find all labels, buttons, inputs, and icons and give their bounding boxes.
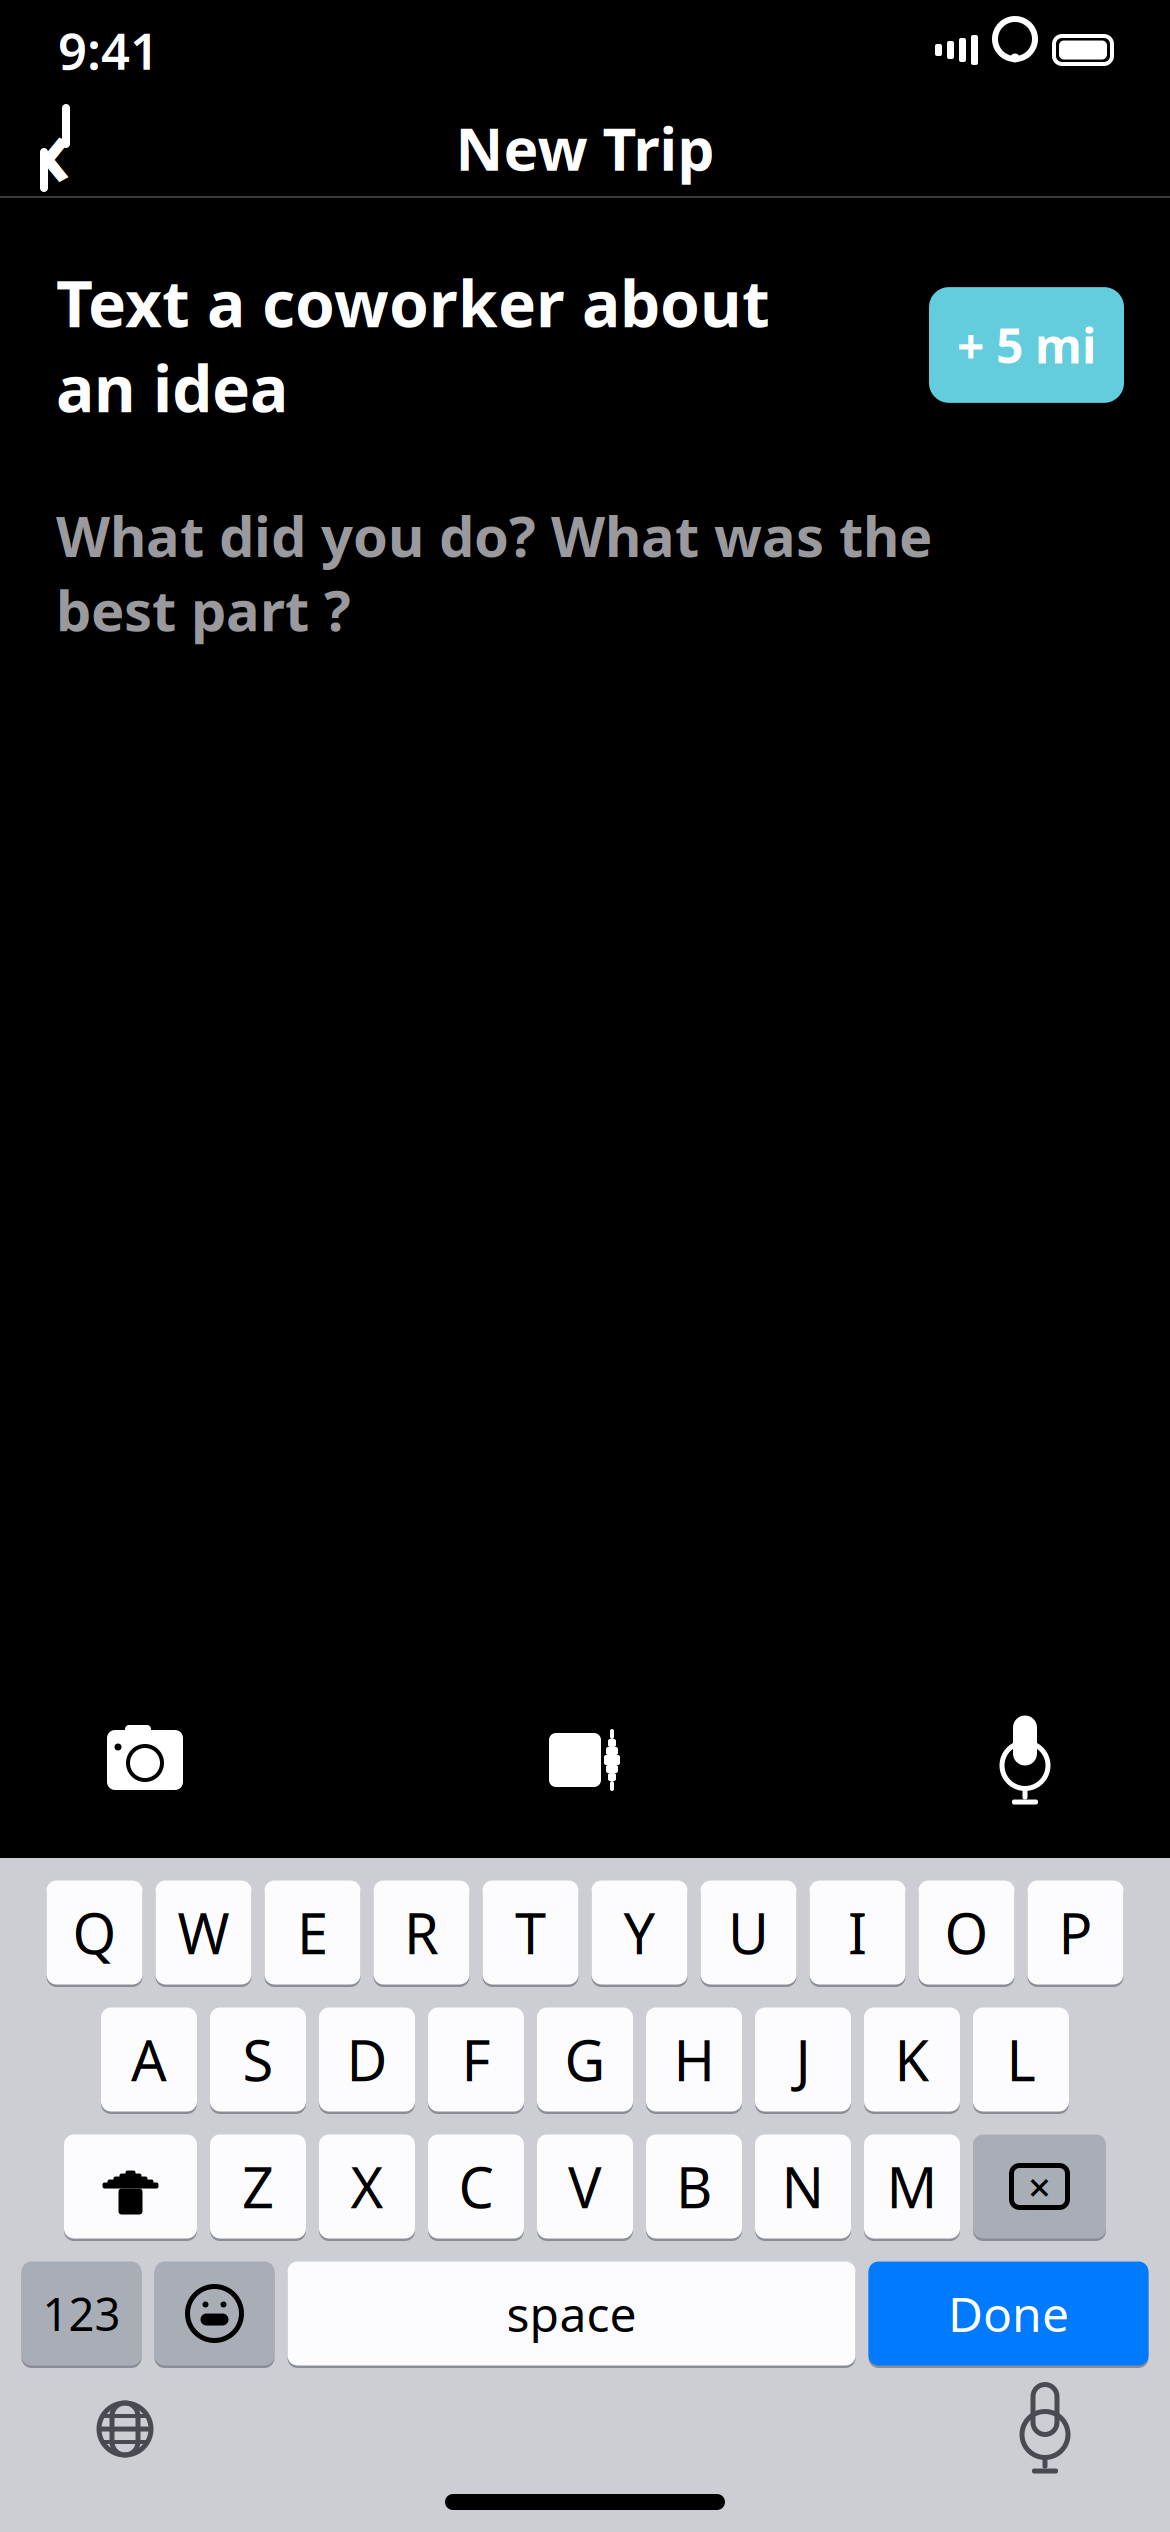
- button[interactable]: B: [646, 2132, 742, 2241]
- staticText: ‹: [37, 81, 72, 215]
- button[interactable]: P: [1027, 1878, 1123, 1987]
- button[interactable]: E: [264, 1878, 360, 1987]
- staticText: O: [944, 1895, 988, 1970]
- button[interactable]: I: [809, 1878, 905, 1987]
- button[interactable]: T: [482, 1878, 578, 1987]
- staticText: New Trip: [455, 109, 714, 187]
- staticText: K: [894, 2022, 929, 2097]
- button[interactable]: K: [864, 2005, 960, 2114]
- button[interactable]: F: [428, 2005, 524, 2114]
- staticText: P: [1058, 1895, 1092, 1970]
- staticText: L: [1006, 2022, 1035, 2097]
- button[interactable]: A: [101, 2005, 197, 2114]
- staticText: space: [506, 2282, 636, 2345]
- staticText: Text a coworker about an idea: [56, 260, 770, 430]
- staticText: G: [564, 2022, 605, 2097]
- button[interactable]: Numbers: [21, 2259, 141, 2368]
- button[interactable]: U: [700, 1878, 796, 1987]
- staticText: V: [568, 2149, 602, 2224]
- staticText: 9:41: [58, 16, 159, 84]
- button[interactable]: X: [319, 2132, 415, 2241]
- button[interactable]: R: [373, 1878, 469, 1987]
- staticText: U: [728, 1895, 769, 1970]
- button[interactable]: Take photo: [65, 1705, 225, 1815]
- staticText: A: [131, 2022, 167, 2097]
- staticText: R: [404, 1895, 439, 1970]
- button[interactable]: G: [537, 2005, 633, 2114]
- staticText: Q: [72, 1895, 116, 1970]
- staticText: H: [673, 2022, 714, 2097]
- button[interactable]: D: [319, 2005, 415, 2114]
- button[interactable]: Y: [591, 1878, 687, 1987]
- button[interactable]: Backspace: [973, 2132, 1106, 2241]
- staticText: ×: [1028, 2160, 1051, 2213]
- staticText: S: [242, 2022, 273, 2097]
- button[interactable]: C: [428, 2132, 524, 2241]
- button[interactable]: Dictation: [985, 2379, 1105, 2479]
- button[interactable]: + 5 mi: [929, 287, 1124, 403]
- staticText: N: [781, 2149, 824, 2224]
- button[interactable]: Record audio: [945, 1705, 1105, 1815]
- staticText: W: [177, 1895, 229, 1970]
- button[interactable]: O: [918, 1878, 1014, 1987]
- button[interactable]: W: [155, 1878, 251, 1987]
- button[interactable]: Emoji: [154, 2259, 274, 2368]
- staticText: Z: [242, 2149, 274, 2224]
- button[interactable]: M: [864, 2132, 960, 2241]
- staticText: Y: [623, 1895, 655, 1970]
- staticText: What did you do? What was the best part …: [56, 498, 932, 647]
- staticText: Done: [948, 2282, 1069, 2345]
- staticText: C: [458, 2149, 493, 2224]
- button[interactable]: S: [210, 2005, 306, 2114]
- staticText: 123: [42, 2283, 120, 2344]
- button[interactable]: J: [755, 2005, 851, 2114]
- button[interactable]: N: [755, 2132, 851, 2241]
- button[interactable]: Q: [46, 1878, 142, 1987]
- staticText: D: [346, 2022, 387, 2097]
- button[interactable]: Done: [868, 2259, 1148, 2368]
- staticText: B: [676, 2149, 712, 2224]
- staticText: X: [350, 2149, 383, 2224]
- button[interactable]: Record video: [505, 1705, 665, 1815]
- button[interactable]: Next keyboard: [65, 2379, 185, 2479]
- button[interactable]: Space: [287, 2259, 855, 2368]
- button[interactable]: L: [973, 2005, 1069, 2114]
- button[interactable]: V: [537, 2132, 633, 2241]
- button[interactable]: Z: [210, 2132, 306, 2241]
- staticText: F: [461, 2022, 490, 2097]
- staticText: T: [515, 1895, 546, 1970]
- button[interactable]: Back: [0, 100, 110, 196]
- staticText: + 5 mi: [957, 313, 1096, 377]
- staticText: E: [297, 1895, 328, 1970]
- button[interactable]: H: [646, 2005, 742, 2114]
- button[interactable]: Shift: [64, 2132, 197, 2241]
- staticText: M: [886, 2149, 937, 2224]
- staticText: I: [848, 1895, 867, 1970]
- staticText: J: [795, 2022, 810, 2097]
